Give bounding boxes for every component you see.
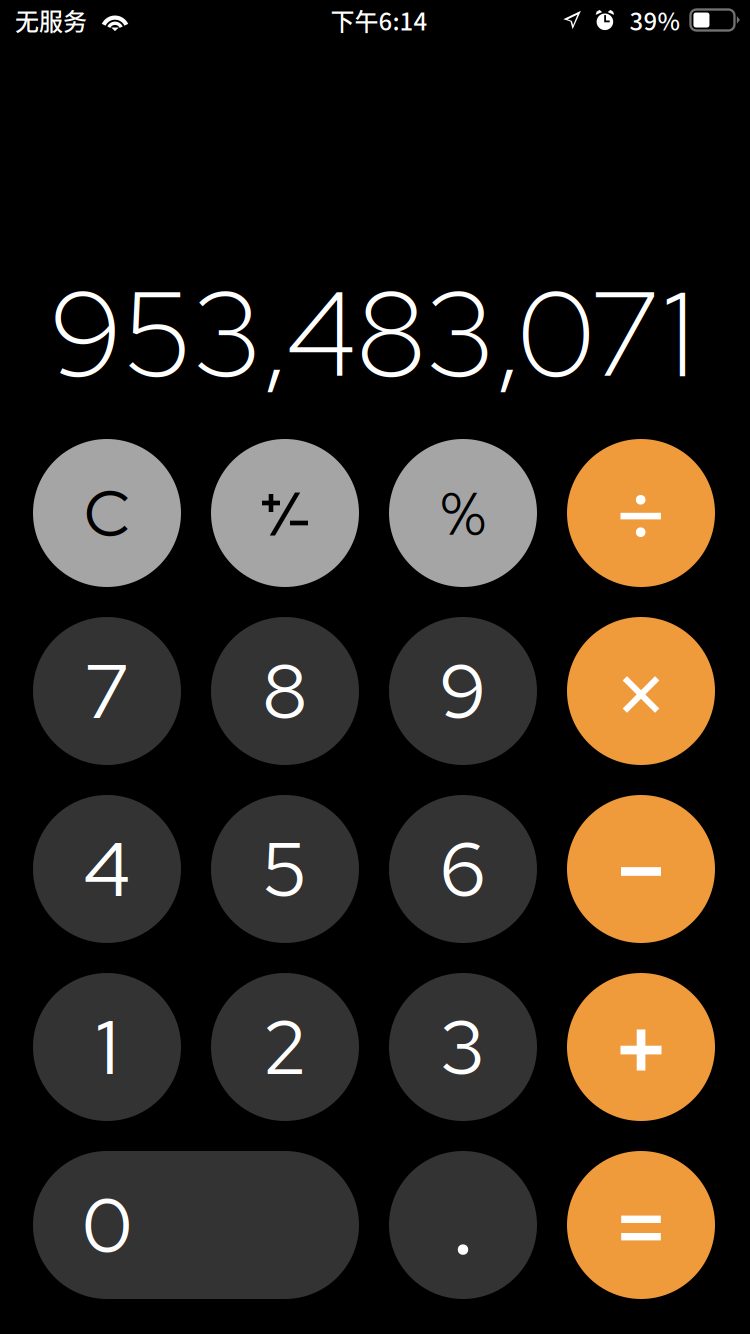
button[interactable]: Minus bbox=[567, 795, 715, 943]
button[interactable]: 6 bbox=[389, 795, 537, 943]
button[interactable]: 4 bbox=[33, 795, 181, 943]
staticText: 8 bbox=[262, 641, 308, 741]
button[interactable]: 1 bbox=[33, 973, 181, 1121]
staticText: 953,483,071 bbox=[49, 254, 694, 413]
staticText: 9 bbox=[439, 641, 486, 741]
button[interactable]: 8 bbox=[211, 617, 359, 765]
button[interactable]: Decimal point bbox=[389, 1151, 537, 1299]
staticText: 3 bbox=[440, 997, 486, 1097]
staticText: 下午6:14 bbox=[330, 3, 427, 37]
button[interactable]: Plus bbox=[567, 973, 715, 1121]
staticText: 7 bbox=[84, 641, 130, 741]
staticText: 2 bbox=[262, 997, 308, 1097]
button[interactable]: Multiply bbox=[567, 617, 715, 765]
button[interactable]: 5 bbox=[211, 795, 359, 943]
button[interactable]: Equals bbox=[567, 1151, 715, 1299]
staticText: 无服务 bbox=[15, 3, 87, 37]
button[interactable]: Plus Minus bbox=[211, 439, 359, 587]
button[interactable]: 0 bbox=[33, 1151, 359, 1299]
staticText: 4 bbox=[83, 819, 130, 919]
staticText: 6 bbox=[440, 819, 486, 919]
staticText: 0 bbox=[82, 1175, 132, 1275]
button[interactable]: 7 bbox=[33, 617, 181, 765]
staticText: 39% bbox=[629, 3, 680, 37]
button[interactable]: 9 bbox=[389, 617, 537, 765]
button[interactable]: 2 bbox=[211, 973, 359, 1121]
staticText: C bbox=[84, 471, 130, 555]
button[interactable]: 3 bbox=[389, 973, 537, 1121]
staticText: 5 bbox=[262, 819, 308, 919]
staticText: 1 bbox=[96, 997, 118, 1097]
button[interactable]: C bbox=[33, 439, 181, 587]
button[interactable]: % bbox=[389, 439, 537, 587]
staticText: % bbox=[440, 472, 485, 553]
button[interactable]: Divide bbox=[567, 439, 715, 587]
